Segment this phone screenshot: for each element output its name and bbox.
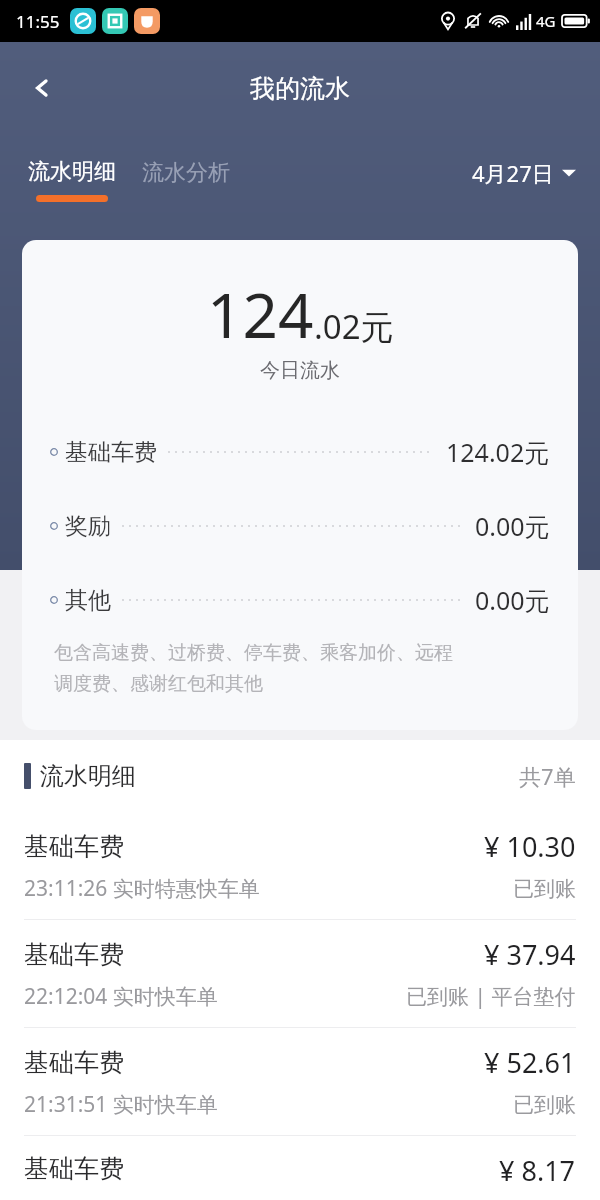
staticText: 124.02元 bbox=[446, 435, 550, 469]
staticText: 基础车费 bbox=[24, 939, 124, 970]
staticText: 基础车费 bbox=[24, 831, 124, 862]
button[interactable]: 基础车费 bbox=[22, 415, 578, 489]
staticText: 已到账 bbox=[513, 876, 576, 902]
staticText: 今日流水 bbox=[22, 358, 578, 383]
staticText: 0.00元 bbox=[475, 509, 550, 543]
staticText: .02元 bbox=[314, 304, 394, 349]
staticText: ¥ 37.94 bbox=[484, 936, 576, 973]
button[interactable]: 4月27日 bbox=[472, 158, 576, 202]
button[interactable]: 基础车费 bbox=[0, 1028, 600, 1135]
staticText: 基础车费 bbox=[65, 438, 157, 467]
staticText: 22:12:04 实时快车单 bbox=[24, 982, 218, 1011]
button[interactable]: 基础车费 bbox=[0, 920, 600, 1027]
button[interactable]: 其他 bbox=[22, 563, 578, 637]
staticText: 其他 bbox=[65, 586, 111, 615]
button[interactable]: 基础车费 bbox=[0, 812, 600, 919]
staticText: 共7单 bbox=[519, 761, 576, 791]
staticText: 已到账 bbox=[513, 1092, 576, 1118]
staticText: 11:55 bbox=[16, 10, 60, 33]
staticText: 流水分析 bbox=[142, 159, 230, 187]
staticText: 4月27日 bbox=[472, 158, 554, 188]
staticText: 4G bbox=[536, 11, 556, 31]
staticText: ¥ 8.17 bbox=[499, 1152, 576, 1184]
staticText: ¥ 52.61 bbox=[484, 1044, 576, 1081]
button[interactable]: 基础车费 bbox=[0, 1136, 600, 1200]
staticText: 已到账 | 平台垫付 bbox=[406, 982, 576, 1011]
button[interactable]: 流水分析 bbox=[140, 155, 232, 205]
staticText: ¥ 10.30 bbox=[484, 828, 576, 865]
button[interactable]: 流水明细 bbox=[26, 158, 118, 202]
staticText: 124 bbox=[207, 272, 314, 356]
staticText: 奖励 bbox=[65, 512, 111, 541]
staticText: 基础车费 bbox=[24, 1153, 124, 1184]
button[interactable]: 奖励 bbox=[22, 489, 578, 563]
staticText: 流水明细 bbox=[28, 158, 116, 186]
button[interactable]: Back bbox=[14, 60, 70, 116]
staticText: 21:31:51 实时快车单 bbox=[24, 1090, 218, 1119]
staticText: 我的流水 bbox=[250, 73, 350, 104]
staticText: 0.00元 bbox=[475, 583, 550, 617]
staticText: 基础车费 bbox=[24, 1047, 124, 1078]
staticText: 23:11:26 实时特惠快车单 bbox=[24, 874, 260, 903]
staticText: 流水明细 bbox=[40, 761, 136, 791]
staticText: 包含高速费、过桥费、停车费、乘客加价、远程 调度费、感谢红包和其他 bbox=[54, 641, 453, 696]
